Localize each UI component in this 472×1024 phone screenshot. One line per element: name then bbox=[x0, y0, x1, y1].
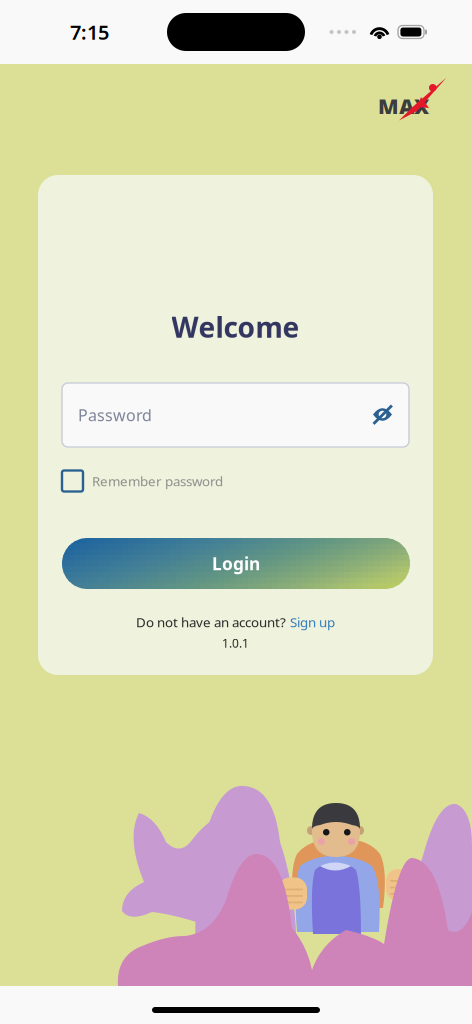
staticText: Do not have an account? bbox=[136, 613, 286, 631]
staticText: Welcome bbox=[171, 308, 299, 346]
staticText: 7:15 bbox=[70, 19, 109, 45]
button[interactable]: Remember password bbox=[62, 469, 409, 493]
staticText: Remember password bbox=[92, 472, 223, 490]
staticText: Sign up bbox=[290, 613, 335, 631]
staticText: Password bbox=[78, 404, 152, 426]
button[interactable]: Show password bbox=[366, 398, 400, 432]
staticText: Login bbox=[212, 552, 260, 575]
staticText: 1.0.1 bbox=[222, 635, 249, 651]
button[interactable]: Sign up bbox=[290, 613, 335, 631]
button[interactable]: Login bbox=[62, 538, 410, 589]
button[interactable]: MAX bbox=[377, 77, 447, 121]
staticText: MAX bbox=[378, 92, 429, 120]
